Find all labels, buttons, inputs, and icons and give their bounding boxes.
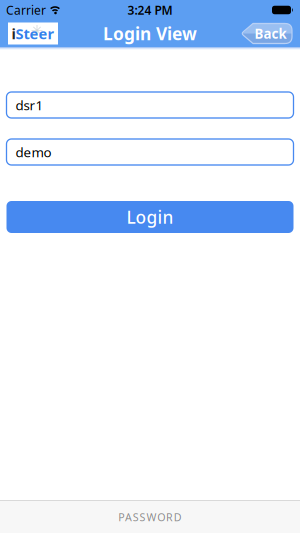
staticText: Login: [126, 205, 173, 228]
button[interactable]: Back: [241, 23, 292, 43]
staticText: Steer: [15, 24, 54, 43]
staticText: demo: [15, 143, 51, 161]
button[interactable]: dsr1: [6, 92, 293, 118]
staticText: PASSWORD: [118, 510, 182, 524]
staticText: Carrier: [6, 2, 46, 18]
staticText: 3:24 PM: [127, 2, 172, 18]
staticText: Back: [254, 25, 286, 42]
button[interactable]: Login: [6, 201, 293, 233]
button[interactable]: PASSWORD: [0, 501, 300, 533]
staticText: i: [11, 24, 15, 43]
button[interactable]: demo: [6, 139, 293, 165]
staticText: dsr1: [15, 96, 43, 114]
staticText: Login View: [103, 22, 197, 45]
